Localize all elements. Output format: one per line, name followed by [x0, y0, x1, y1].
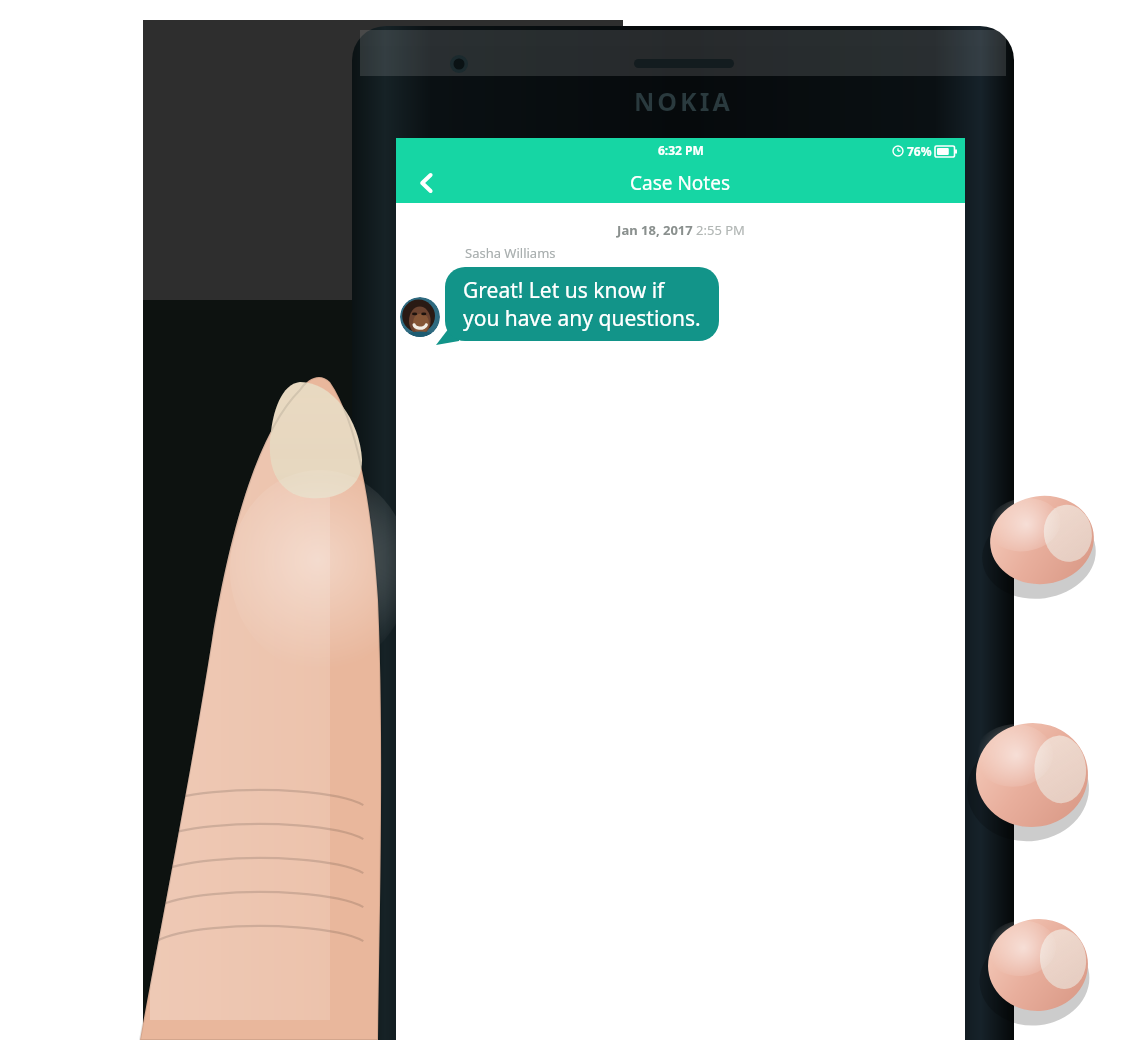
staticText: 6:32 PM	[658, 142, 704, 158]
staticText: Case Notes	[630, 170, 731, 196]
button[interactable]: Back	[408, 164, 446, 202]
button[interactable]: Great! Let us know if you have any quest…	[445, 267, 719, 341]
staticText: 76%	[907, 143, 932, 159]
staticText: Sasha Williams	[465, 244, 556, 262]
staticText: Great! Let us know if you have any quest…	[463, 276, 701, 332]
staticText: Jan 18, 2017 2:55 PM	[617, 221, 745, 239]
button[interactable]: Sasha Williams avatar	[400, 297, 440, 337]
staticText: NOKIA	[634, 84, 733, 118]
